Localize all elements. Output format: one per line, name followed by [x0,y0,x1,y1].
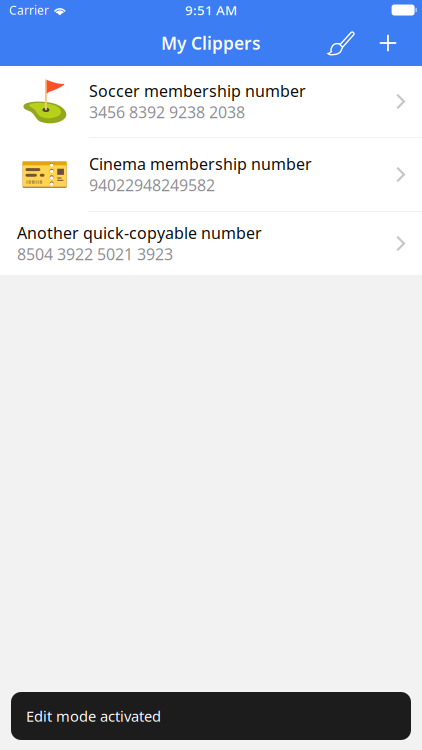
staticText: 94022948249582 [89,174,215,196]
button[interactable]: ⛳ [0,66,422,137]
button[interactable]: Another quick-copyable number [0,212,422,275]
staticText: Another quick-copyable number [17,222,262,243]
button[interactable]: 🎫 [0,138,422,211]
staticText: 🎫 [20,152,70,197]
button[interactable]: Edit [319,20,363,66]
staticText: Soccer membership number [89,80,306,101]
staticText: My Clippers [161,31,261,54]
staticText: 3456 8392 9238 2038 [89,101,245,123]
staticText: 8504 3922 5021 3923 [17,243,173,265]
staticText: 9:51 AM [185,1,237,19]
staticText: Edit mode activated [26,706,161,726]
staticText: ⛳ [20,79,70,124]
staticText: Cinema membership number [89,153,312,174]
staticText: Carrier [9,2,49,18]
button[interactable]: Add [368,20,408,66]
